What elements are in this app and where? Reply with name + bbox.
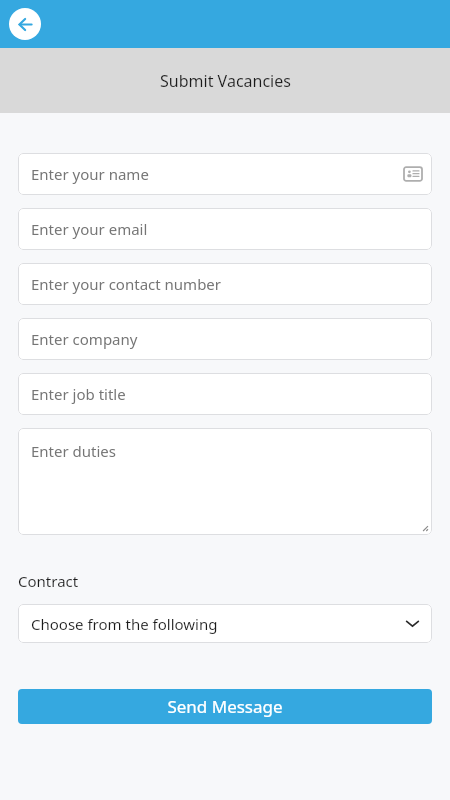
staticText: Enter duties <box>31 441 117 461</box>
staticText: Enter your contact number <box>31 274 222 294</box>
staticText: Choose from the following <box>31 614 218 634</box>
staticText: Contract <box>18 571 79 591</box>
button[interactable]: Send Message <box>18 689 432 724</box>
button[interactable]: Enter your contact number <box>18 263 432 305</box>
button[interactable]: Back <box>9 8 41 40</box>
button[interactable]: Enter your name <box>18 153 432 195</box>
staticText: Enter your name <box>31 164 149 184</box>
button[interactable]: Enter job title <box>18 373 432 415</box>
staticText: Submit Vacancies <box>160 70 291 92</box>
staticText: Enter company <box>31 329 138 349</box>
staticText: Enter your email <box>31 219 148 239</box>
staticText: Enter job title <box>31 384 126 404</box>
button[interactable]: Enter your email <box>18 208 432 250</box>
button[interactable]: Enter duties <box>18 428 432 535</box>
button[interactable]: Enter company <box>18 318 432 360</box>
staticText: Send Message <box>167 695 283 718</box>
button[interactable]: Choose from the following <box>18 604 432 643</box>
